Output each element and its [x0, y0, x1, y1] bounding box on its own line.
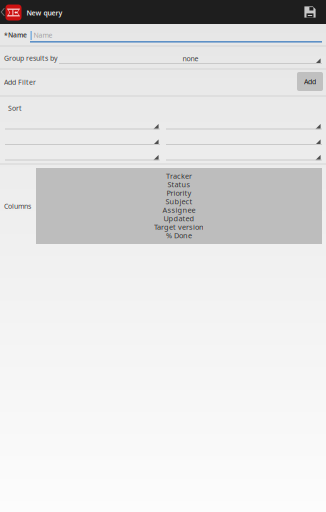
staticText: Columns — [4, 201, 31, 211]
button[interactable]: Select value — [5, 135, 160, 147]
button[interactable]: Select value — [166, 119, 322, 131]
staticText: Subject — [165, 196, 192, 206]
staticText: Group results by — [4, 53, 58, 63]
staticText: New query — [26, 8, 62, 17]
staticText: % Done — [166, 230, 192, 240]
staticText: Name — [33, 30, 52, 40]
button[interactable]: Select value — [166, 150, 322, 162]
staticText: Target version — [154, 222, 204, 232]
staticText: *Name — [4, 30, 27, 40]
staticText: Tracker — [166, 171, 192, 181]
staticText: Add — [304, 77, 316, 86]
staticText: Assignee — [162, 205, 195, 215]
button[interactable]: Save — [298, 0, 322, 24]
staticText: Add Filter — [4, 77, 36, 87]
staticText: Priority — [166, 188, 191, 198]
staticText: none — [182, 54, 198, 63]
button[interactable]: Select value — [5, 150, 160, 162]
staticText: Sort — [8, 103, 22, 113]
button[interactable]: Select value — [5, 119, 160, 131]
button[interactable]: none — [59, 54, 322, 66]
button[interactable]: Back — [0, 0, 24, 24]
button[interactable]: Select value — [166, 135, 322, 147]
staticText: Updated — [163, 213, 194, 223]
staticText: Status — [167, 179, 190, 189]
button[interactable]: Add — [297, 72, 323, 91]
